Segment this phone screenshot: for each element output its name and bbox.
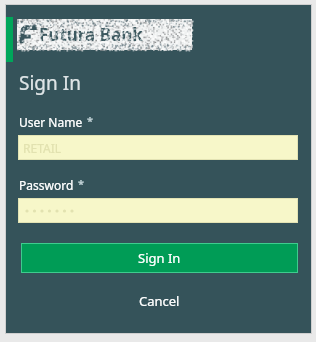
staticText: Futura Bank (39, 23, 143, 46)
staticText: RETAIL (23, 140, 61, 156)
staticText: User Name (19, 114, 83, 130)
staticText: * (78, 176, 84, 191)
staticText: Password (19, 177, 74, 193)
button[interactable]: Cancel (21, 289, 298, 313)
staticText: Sign In (138, 249, 181, 267)
staticText: * (87, 113, 93, 128)
staticText: Sign In (19, 70, 81, 96)
button[interactable]: Sign In (21, 243, 298, 273)
button[interactable] (18, 198, 298, 223)
button[interactable]: RETAIL (18, 135, 298, 160)
staticText: Cancel (139, 292, 180, 310)
